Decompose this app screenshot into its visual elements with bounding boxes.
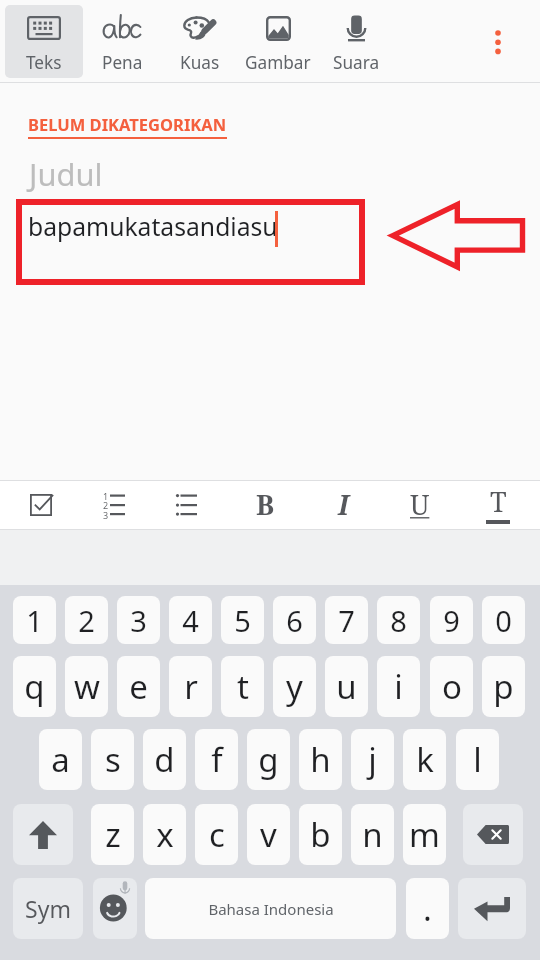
button[interactable]: Text color xyxy=(470,480,526,530)
button[interactable]: 3 xyxy=(117,596,160,644)
button[interactable]: 6 xyxy=(273,596,316,644)
button[interactable]: Sym xyxy=(13,878,83,939)
staticText: l xyxy=(473,737,482,782)
staticText: Suara xyxy=(333,51,380,74)
button[interactable]: 0 xyxy=(482,596,525,644)
button[interactable]: Shift xyxy=(13,804,73,865)
button[interactable]: m xyxy=(403,804,446,865)
staticText: w xyxy=(74,664,100,709)
button[interactable]: v xyxy=(247,804,290,865)
staticText: Pena xyxy=(102,51,143,74)
staticText: Kuas xyxy=(180,51,220,74)
button[interactable]: 1 xyxy=(13,596,56,644)
button[interactable]: h xyxy=(299,729,342,790)
button[interactable]: z xyxy=(91,804,134,865)
button[interactable]: x xyxy=(143,804,186,865)
button[interactable]: g xyxy=(247,729,290,790)
button[interactable]: Bahasa Indonesia xyxy=(145,878,396,939)
button[interactable]: p xyxy=(482,656,525,717)
button[interactable]: k xyxy=(403,729,446,790)
staticText: r xyxy=(184,664,198,709)
staticText: T xyxy=(490,483,507,520)
staticText: j xyxy=(368,737,377,782)
staticText: Bahasa Indonesia xyxy=(208,899,334,919)
staticText: u xyxy=(336,664,357,709)
staticText: q xyxy=(24,664,45,709)
button[interactable]: q xyxy=(13,656,56,717)
staticText: Judul xyxy=(29,153,103,195)
staticText: B xyxy=(256,486,275,523)
button[interactable]: 5 xyxy=(221,596,264,644)
button[interactable]: o xyxy=(430,656,473,717)
staticText: 9 xyxy=(443,601,460,640)
staticText: m xyxy=(409,812,440,857)
button[interactable]: Enter xyxy=(458,878,526,939)
staticText: Gambar xyxy=(245,51,311,74)
button[interactable]: Bold xyxy=(237,480,293,530)
staticText: 0 xyxy=(495,601,512,640)
button[interactable]: . xyxy=(406,878,449,939)
button[interactable]: r xyxy=(169,656,212,717)
button[interactable]: u xyxy=(325,656,368,717)
button[interactable]: n xyxy=(351,804,394,865)
button[interactable]: a xyxy=(39,729,82,790)
staticText: . xyxy=(423,886,432,931)
staticText: z xyxy=(105,812,121,857)
button[interactable]: More options xyxy=(474,18,522,66)
staticText: c xyxy=(209,812,225,857)
button[interactable]: 4 xyxy=(169,596,212,644)
staticText: i xyxy=(394,664,403,709)
staticText: a xyxy=(51,737,70,782)
staticText: BELUM DIKATEGORIKAN xyxy=(28,113,227,135)
staticText: Sym xyxy=(25,893,71,924)
staticText: e xyxy=(129,664,148,709)
staticText: 7 xyxy=(338,601,355,640)
button[interactable]: 2 xyxy=(65,596,108,644)
button[interactable]: b xyxy=(299,804,342,865)
button[interactable]: 7 xyxy=(325,596,368,644)
button[interactable]: Checklist xyxy=(13,480,69,530)
button[interactable]: i xyxy=(377,656,420,717)
button[interactable]: Bulleted list xyxy=(159,480,215,530)
staticText: t xyxy=(237,664,249,709)
staticText: d xyxy=(154,737,175,782)
button[interactable]: Pena xyxy=(83,5,161,78)
button[interactable]: BELUM DIKATEGORIKAN xyxy=(22,106,235,146)
staticText: v xyxy=(260,812,277,857)
staticText: p xyxy=(493,664,514,709)
button[interactable]: Kuas xyxy=(161,5,239,78)
button[interactable]: s xyxy=(91,729,134,790)
staticText: o xyxy=(442,664,462,709)
staticText: bapamukatasandiasu xyxy=(28,210,278,244)
button[interactable]: l xyxy=(456,729,499,790)
button[interactable]: f xyxy=(195,729,238,790)
button[interactable]: Backspace xyxy=(463,804,523,865)
button[interactable]: Italic xyxy=(315,480,371,530)
staticText: I xyxy=(338,486,349,523)
staticText: 3 xyxy=(130,601,147,640)
button[interactable]: Numbered list xyxy=(86,480,142,530)
staticText: 1 xyxy=(103,490,109,502)
staticText: 8 xyxy=(390,601,407,640)
staticText: x xyxy=(156,812,174,857)
button[interactable]: Teks xyxy=(5,5,83,78)
button[interactable]: e xyxy=(117,656,160,717)
button[interactable]: Emoji xyxy=(93,878,137,939)
button[interactable]: j xyxy=(351,729,394,790)
staticText: y xyxy=(286,664,303,709)
staticText: g xyxy=(258,737,279,782)
button[interactable]: c xyxy=(195,804,238,865)
button[interactable]: 8 xyxy=(377,596,420,644)
button[interactable]: Suara xyxy=(317,5,395,78)
button[interactable]: Gambar xyxy=(239,5,317,78)
button[interactable]: y xyxy=(273,656,316,717)
staticText: 6 xyxy=(286,601,303,640)
button[interactable]: Underline xyxy=(392,480,448,530)
button[interactable]: d xyxy=(143,729,186,790)
button[interactable]: t xyxy=(221,656,264,717)
button[interactable]: w xyxy=(65,656,108,717)
staticText: h xyxy=(310,737,331,782)
staticText: 4 xyxy=(182,601,199,640)
staticText: k xyxy=(416,737,434,782)
button[interactable]: 9 xyxy=(430,596,473,644)
